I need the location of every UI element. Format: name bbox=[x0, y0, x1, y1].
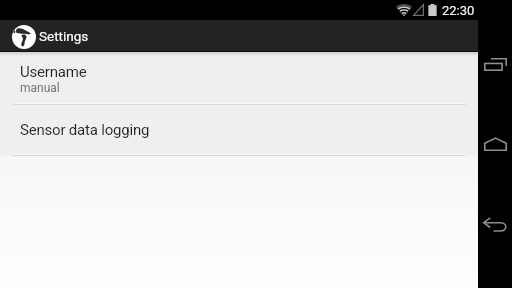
button[interactable]: Settings bbox=[0, 20, 99, 51]
staticText: Username bbox=[20, 63, 87, 81]
button[interactable]: Recent apps bbox=[478, 24, 512, 104]
button[interactable]: Home bbox=[478, 104, 512, 184]
staticText: Settings bbox=[39, 28, 89, 44]
button[interactable]: Back bbox=[478, 184, 512, 264]
staticText: 22:30 bbox=[442, 3, 475, 18]
button[interactable]: Username bbox=[0, 52, 478, 103]
button[interactable]: Sensor data logging bbox=[0, 105, 478, 154]
staticText: Sensor data logging bbox=[20, 121, 150, 139]
staticText: manual bbox=[20, 81, 60, 95]
